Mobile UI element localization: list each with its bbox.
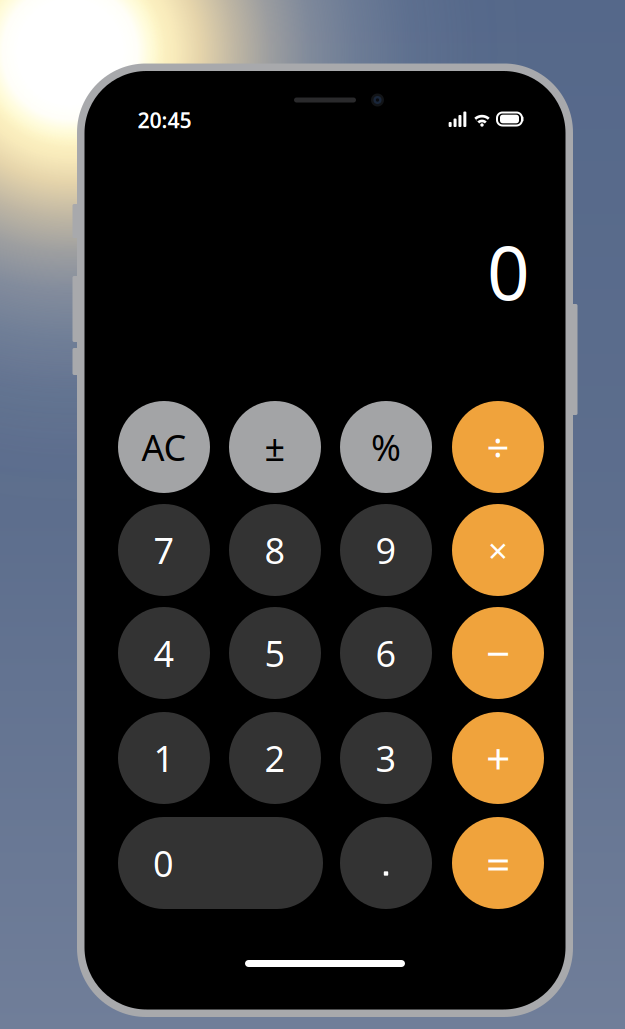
button[interactable]: 3 bbox=[340, 712, 432, 804]
button[interactable]: ÷ bbox=[452, 401, 544, 493]
button[interactable]: AC bbox=[118, 401, 210, 493]
button[interactable]: % bbox=[340, 401, 432, 493]
staticText: AC bbox=[141, 423, 186, 471]
staticText: 1 bbox=[153, 734, 174, 782]
staticText: + bbox=[486, 730, 510, 786]
button[interactable]: 1 bbox=[118, 712, 210, 804]
staticText: % bbox=[371, 423, 401, 471]
button[interactable]: × bbox=[452, 504, 544, 596]
button[interactable]: 0 bbox=[118, 817, 323, 909]
button[interactable]: 5 bbox=[229, 607, 321, 699]
button[interactable]: ± bbox=[229, 401, 321, 493]
staticText: 20:45 bbox=[137, 106, 191, 134]
staticText: 2 bbox=[264, 734, 285, 782]
staticText: 5 bbox=[264, 629, 285, 677]
staticText: × bbox=[488, 527, 508, 573]
button[interactable]: 2 bbox=[229, 712, 321, 804]
staticText: ± bbox=[264, 423, 285, 471]
staticText: − bbox=[486, 625, 510, 681]
button[interactable]: + bbox=[452, 712, 544, 804]
staticText: 7 bbox=[153, 526, 174, 574]
button[interactable]: 9 bbox=[340, 504, 432, 596]
staticText: 9 bbox=[375, 526, 396, 574]
button[interactable]: Decimal point bbox=[340, 817, 432, 909]
staticText: 6 bbox=[375, 629, 396, 677]
staticText: = bbox=[486, 835, 510, 891]
staticText: 0 bbox=[153, 839, 174, 887]
button[interactable]: 8 bbox=[229, 504, 321, 596]
button[interactable]: 6 bbox=[340, 607, 432, 699]
staticText: 3 bbox=[375, 734, 396, 782]
staticText: 4 bbox=[153, 629, 174, 677]
button[interactable]: 4 bbox=[118, 607, 210, 699]
button[interactable]: = bbox=[452, 817, 544, 909]
button[interactable]: 7 bbox=[118, 504, 210, 596]
button[interactable]: − bbox=[452, 607, 544, 699]
staticText: 0 bbox=[487, 221, 530, 321]
staticText: 8 bbox=[264, 526, 285, 574]
staticText: ÷ bbox=[486, 420, 509, 473]
